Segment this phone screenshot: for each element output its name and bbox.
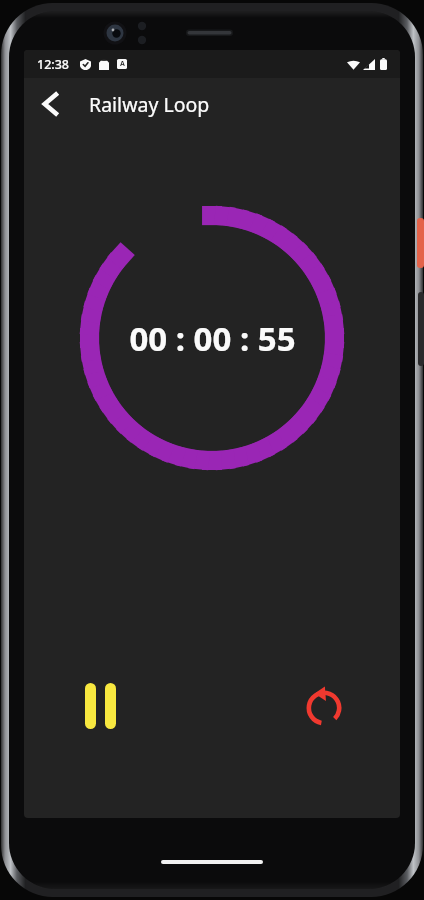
button[interactable]: Pause bbox=[68, 674, 132, 738]
button[interactable]: Reset bbox=[292, 674, 356, 738]
staticText: Railway Loop bbox=[89, 91, 210, 118]
staticText: 00 : 00 : 55 bbox=[129, 316, 296, 361]
staticText: A bbox=[120, 59, 125, 69]
button[interactable]: Back bbox=[28, 82, 72, 126]
staticText: 12:38 bbox=[37, 56, 70, 73]
